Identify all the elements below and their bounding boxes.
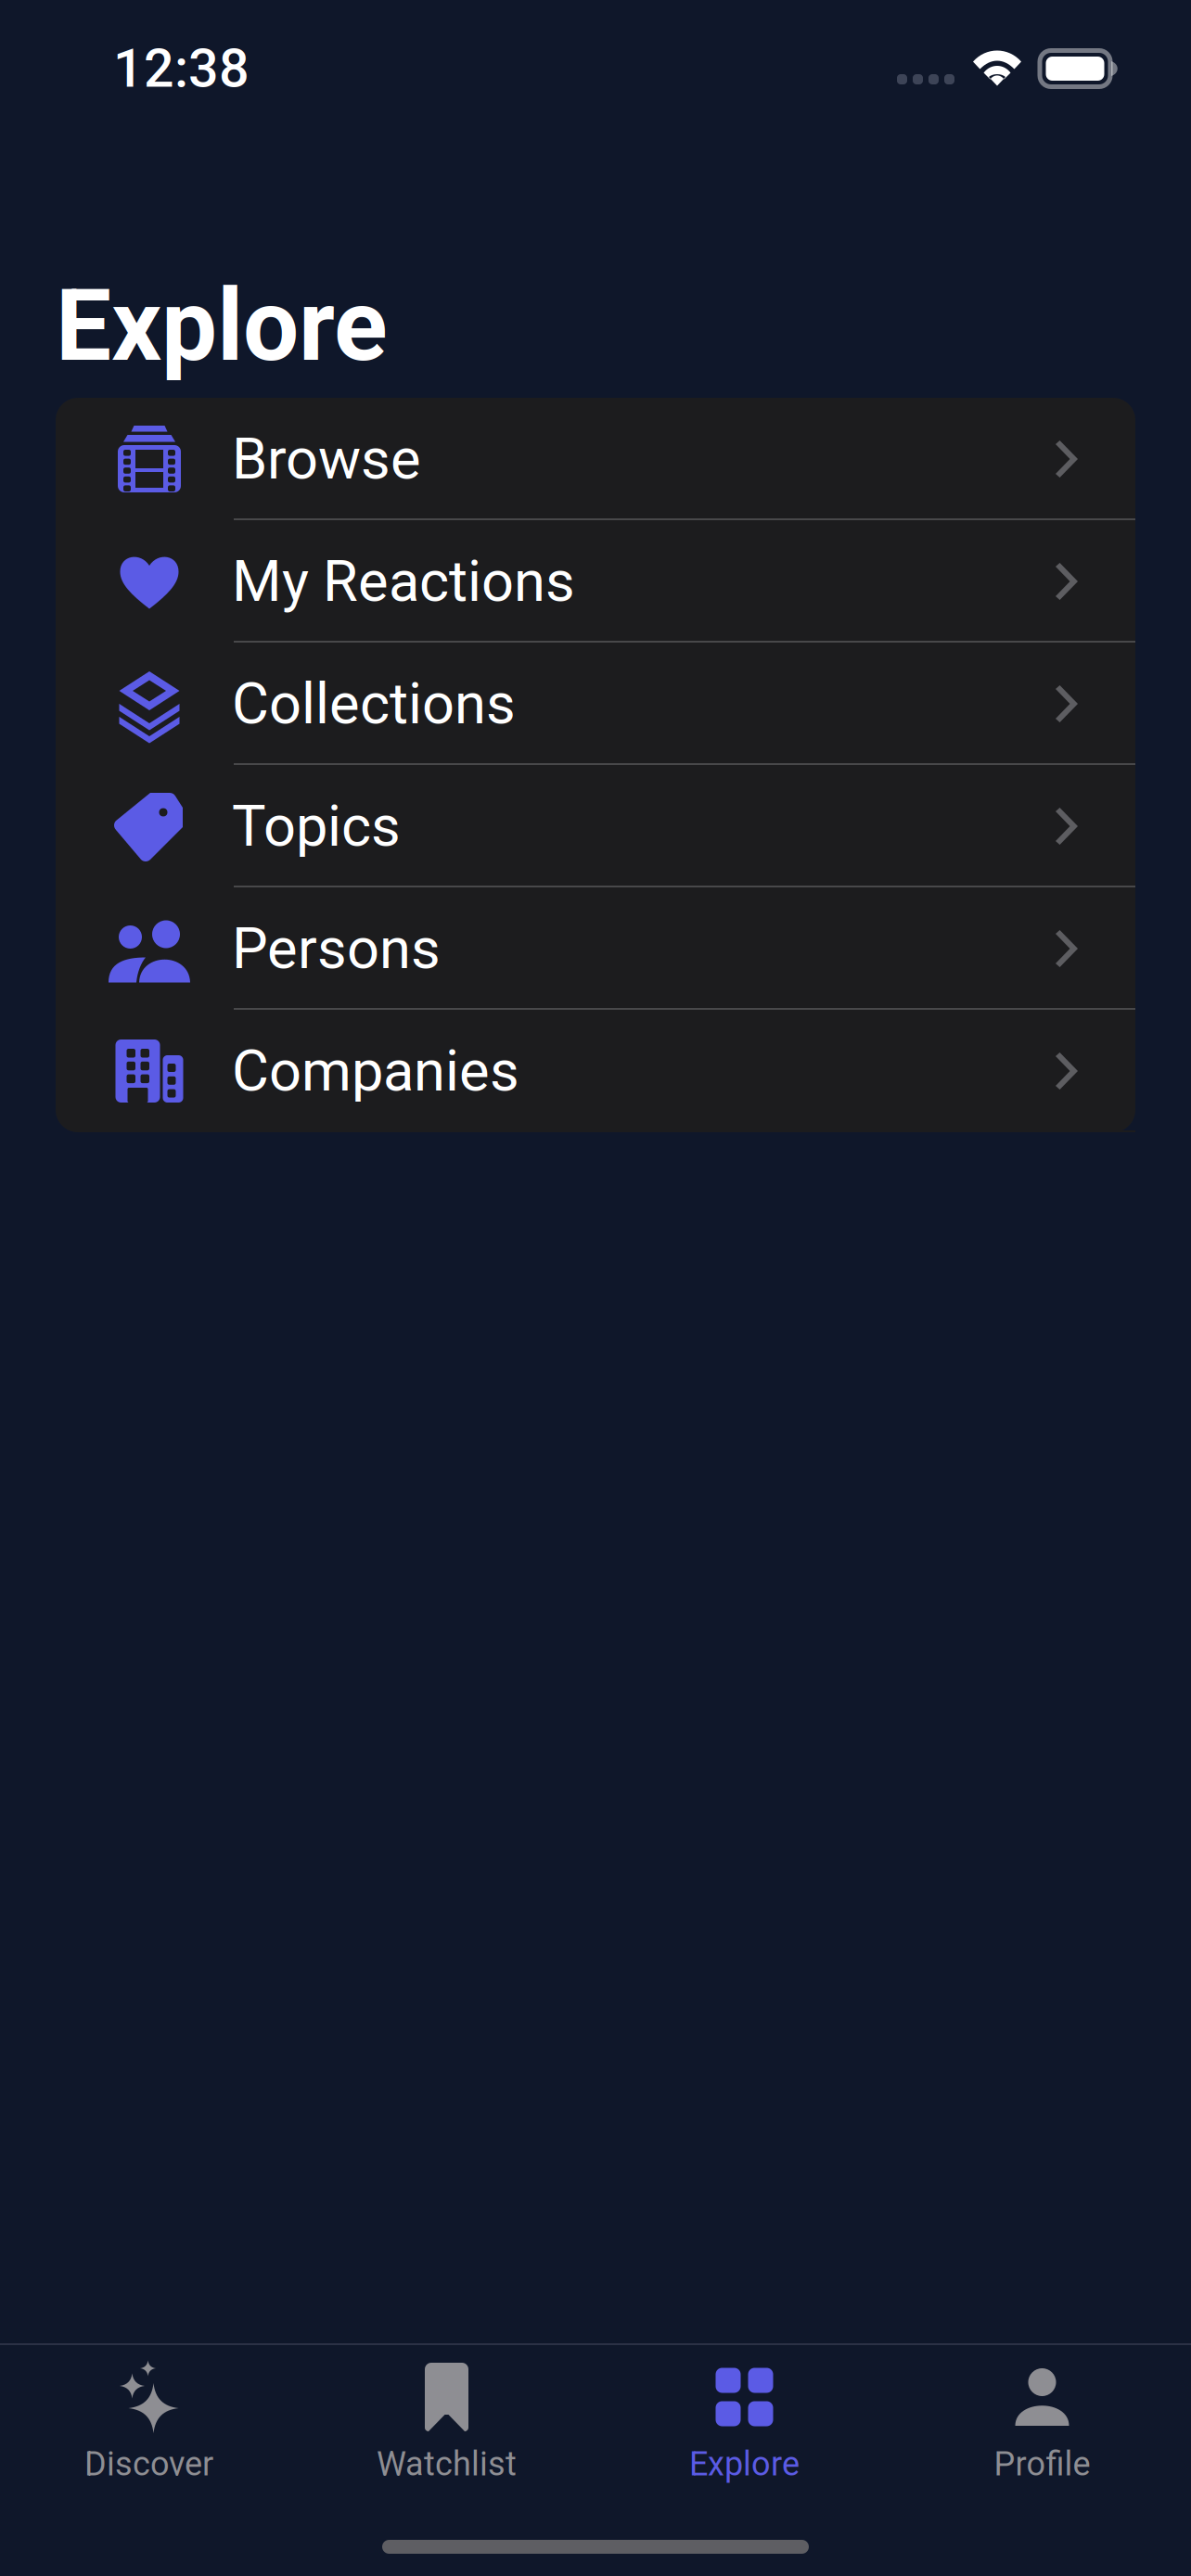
staticText: Explore <box>56 268 388 384</box>
staticText: Browse <box>232 426 421 492</box>
staticText: Persons <box>232 915 441 982</box>
button[interactable]: Profile <box>893 2360 1191 2501</box>
button[interactable]: Watchlist <box>298 2360 595 2501</box>
staticText: Watchlist <box>377 2444 517 2483</box>
staticText: Discover <box>84 2444 213 2483</box>
button[interactable]: Explore <box>595 2360 893 2501</box>
staticText: 12:38 <box>113 37 250 100</box>
staticText: My Reactions <box>232 548 575 615</box>
button[interactable]: Topics <box>56 765 1135 887</box>
staticText: Explore <box>689 2444 800 2483</box>
staticText: Companies <box>232 1038 519 1104</box>
button[interactable]: Persons <box>56 887 1135 1010</box>
staticText: Topics <box>232 793 401 860</box>
button[interactable]: Discover <box>0 2360 298 2501</box>
button[interactable]: Collections <box>56 643 1135 765</box>
button[interactable]: Companies <box>56 1010 1135 1132</box>
staticText: Collections <box>232 671 516 737</box>
button[interactable]: My Reactions <box>56 520 1135 643</box>
button[interactable]: Browse <box>56 398 1135 520</box>
staticText: Profile <box>994 2444 1090 2483</box>
